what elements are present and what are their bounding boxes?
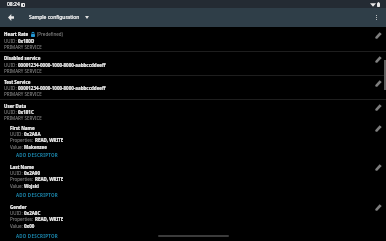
staticText: 0x181C xyxy=(18,109,34,115)
staticText: 00001234-0000-1000-8000-aabbccddeeff xyxy=(18,85,106,91)
staticText: 08:24 xyxy=(7,1,20,8)
button[interactable] xyxy=(0,75,386,99)
staticText: Makenzee xyxy=(24,144,47,150)
staticText: Properties: xyxy=(10,216,34,222)
button[interactable]: ADD DESCRIPTOR xyxy=(16,233,59,239)
staticText: 0x00 xyxy=(24,223,35,229)
staticText: User Data xyxy=(4,103,27,109)
staticText: UUID: xyxy=(10,210,23,216)
staticText: (Predefined) xyxy=(37,31,63,37)
button[interactable]: Edit xyxy=(372,30,384,41)
button[interactable] xyxy=(0,27,386,51)
staticText: Properties: xyxy=(10,176,34,182)
staticText: PRIMARY SERVICE xyxy=(4,68,42,74)
staticText: Value: xyxy=(10,183,23,189)
staticText: ADD DESCRIPTOR xyxy=(16,192,59,198)
button[interactable]: Edit xyxy=(372,162,384,173)
button[interactable]: Navigate up xyxy=(0,8,22,27)
staticText: UUID: xyxy=(4,109,17,115)
staticText: 0x180D xyxy=(18,38,35,44)
button[interactable]: Edit xyxy=(372,123,384,134)
staticText: Wojski xyxy=(24,183,39,189)
button[interactable] xyxy=(0,122,386,161)
staticText: Gender xyxy=(10,204,27,210)
staticText: 0x2A90 xyxy=(24,170,41,176)
button[interactable]: More options xyxy=(367,8,386,27)
button[interactable]: ADD DESCRIPTOR xyxy=(16,192,59,198)
staticText: 0x2A8C xyxy=(24,210,41,216)
staticText: UUID: xyxy=(4,38,17,44)
staticText: Heart Rate xyxy=(4,31,29,37)
button[interactable]: Edit xyxy=(372,78,384,89)
staticText: UUID: xyxy=(4,85,17,91)
staticText: Disabled service xyxy=(4,55,41,61)
staticText: PRIMARY SERVICE xyxy=(4,44,42,50)
staticText: UUID: xyxy=(10,131,23,137)
staticText: 00001234-0000-1000-8000-aabbccddeeff xyxy=(18,62,106,68)
button[interactable] xyxy=(0,51,386,75)
staticText: PRIMARY SERVICE xyxy=(4,115,42,121)
staticText: PRIMARY SERVICE xyxy=(4,91,42,97)
staticText: Test Service xyxy=(4,79,31,85)
staticText: UUID: xyxy=(10,170,23,176)
button[interactable]: Edit xyxy=(372,202,384,213)
staticText: Value: xyxy=(10,223,23,229)
button[interactable]: ADD DESCRIPTOR xyxy=(16,152,59,158)
staticText: READ, WRITE xyxy=(35,216,64,222)
staticText: UUID: xyxy=(4,62,17,68)
staticText: ADD DESCRIPTOR xyxy=(16,152,59,158)
staticText: ADD DESCRIPTOR xyxy=(16,233,59,239)
staticText: First Name xyxy=(10,125,35,131)
staticText: 0x2A8A xyxy=(24,131,41,137)
staticText: Sample configuration xyxy=(29,14,80,21)
button[interactable]: Sample configuration xyxy=(29,14,89,21)
staticText: Properties: xyxy=(10,137,34,143)
button[interactable]: Edit xyxy=(372,102,384,113)
staticText: Value: xyxy=(10,144,23,150)
staticText: Last Name xyxy=(10,164,35,170)
button[interactable]: Edit xyxy=(372,54,384,65)
staticText: READ, WRITE xyxy=(35,176,64,182)
button[interactable] xyxy=(0,99,386,122)
button[interactable] xyxy=(0,201,386,240)
staticText: READ, WRITE xyxy=(35,137,64,143)
button[interactable] xyxy=(0,161,386,200)
